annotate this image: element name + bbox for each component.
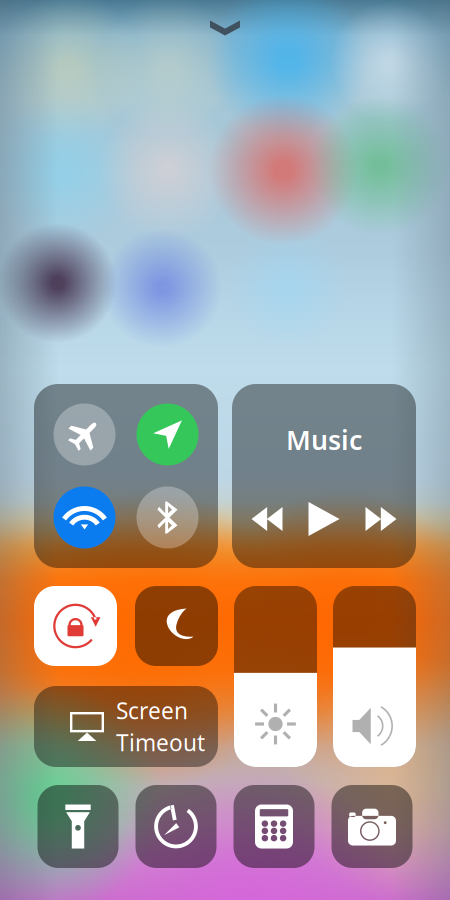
button[interactable]: Screen bbox=[34, 686, 218, 767]
button[interactable]: Camera bbox=[331, 785, 412, 868]
button[interactable]: Previous Track bbox=[251, 507, 282, 531]
button[interactable]: Flashlight bbox=[37, 785, 118, 868]
button[interactable]: Brightness bbox=[234, 586, 317, 767]
staticText: Screen bbox=[116, 695, 188, 725]
button[interactable]: Calculator bbox=[233, 785, 314, 868]
button[interactable]: Bluetooth bbox=[136, 486, 198, 548]
button[interactable]: Timer bbox=[135, 785, 216, 868]
button[interactable]: Airplane Mode bbox=[53, 403, 115, 465]
button[interactable]: Wi-Fi bbox=[53, 486, 115, 548]
button[interactable]: Close Control Center bbox=[0, 0, 450, 56]
button[interactable]: Play bbox=[308, 502, 339, 536]
button[interactable]: Next Track bbox=[365, 507, 396, 531]
staticText: Music bbox=[286, 422, 362, 457]
button[interactable]: Volume bbox=[333, 586, 416, 767]
staticText: Timeout bbox=[116, 727, 205, 758]
button[interactable]: Location bbox=[136, 403, 198, 465]
button[interactable]: Rotation Lock bbox=[34, 586, 117, 666]
button[interactable]: Do Not Disturb bbox=[135, 586, 218, 666]
